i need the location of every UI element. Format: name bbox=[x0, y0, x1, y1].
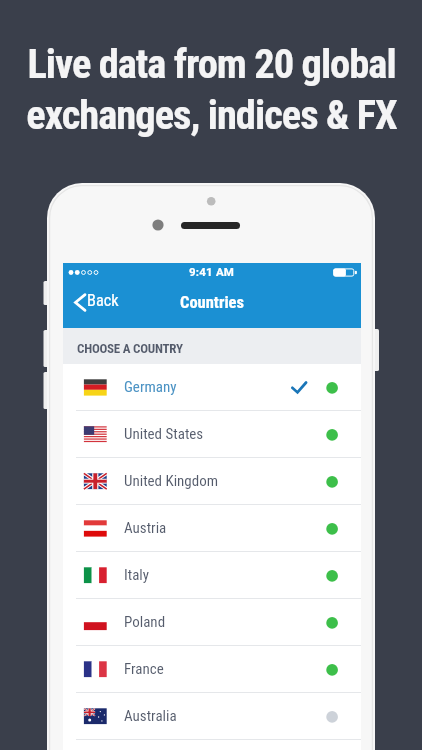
staticText: CHOOSE A COUNTRY bbox=[77, 341, 183, 356]
staticText: United States bbox=[124, 425, 204, 443]
staticText: Back bbox=[87, 291, 119, 310]
button[interactable]: France bbox=[63, 646, 361, 693]
staticText: Poland bbox=[124, 613, 166, 631]
staticText: United Kingdom bbox=[124, 472, 219, 490]
staticText: France bbox=[124, 660, 164, 678]
button[interactable]: Italy bbox=[63, 552, 361, 599]
button[interactable]: Austria bbox=[63, 505, 361, 552]
staticText: Countries bbox=[180, 293, 244, 312]
staticText: Germany bbox=[124, 378, 177, 396]
staticText: Live data from 20 global bbox=[27, 40, 396, 87]
button[interactable]: Back bbox=[74, 281, 119, 324]
button[interactable]: Germany bbox=[63, 364, 361, 411]
staticText: Austria bbox=[124, 519, 167, 537]
staticText: Australia bbox=[124, 707, 177, 725]
button[interactable]: United States bbox=[63, 411, 361, 458]
button[interactable]: Poland bbox=[63, 599, 361, 646]
button[interactable]: Australia bbox=[63, 693, 361, 740]
staticText: exchanges, indices & FX bbox=[26, 91, 397, 138]
staticText: 9:41 AM bbox=[189, 265, 235, 278]
staticText: Italy bbox=[124, 566, 150, 584]
button[interactable]: United Kingdom bbox=[63, 458, 361, 505]
